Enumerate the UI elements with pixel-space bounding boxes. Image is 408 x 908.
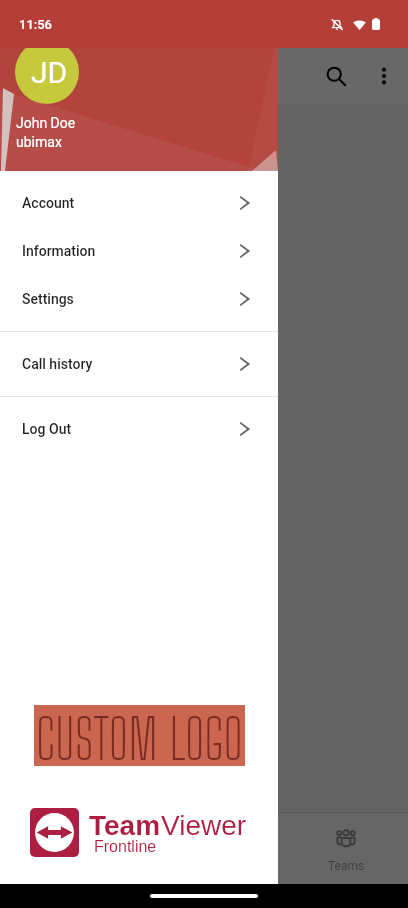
staticText: 11:56 <box>19 17 53 32</box>
staticText: Call history <box>22 356 93 372</box>
button[interactable]: Call history <box>0 340 278 388</box>
staticText: Frontline <box>94 838 157 856</box>
staticText: CUSTOM LOGO <box>36 706 243 767</box>
staticText: Account <box>22 195 75 211</box>
button[interactable]: Search <box>312 52 360 100</box>
staticText: John Doe <box>16 115 76 131</box>
staticText: Log Out <box>22 421 72 437</box>
staticText: Team <box>89 810 161 841</box>
staticText: JD <box>31 55 68 90</box>
button[interactable]: Settings <box>0 275 278 323</box>
staticText: Settings <box>22 291 74 307</box>
button[interactable]: Log Out <box>0 405 278 453</box>
staticText: Teams <box>328 859 365 873</box>
button[interactable]: Teams <box>294 812 398 884</box>
staticText: ubimax <box>16 134 62 150</box>
button[interactable]: Account <box>0 179 278 227</box>
button[interactable]: More options <box>360 52 408 100</box>
button[interactable]: Information <box>0 227 278 275</box>
staticText: Viewer <box>161 810 247 841</box>
staticText: Information <box>22 243 96 259</box>
